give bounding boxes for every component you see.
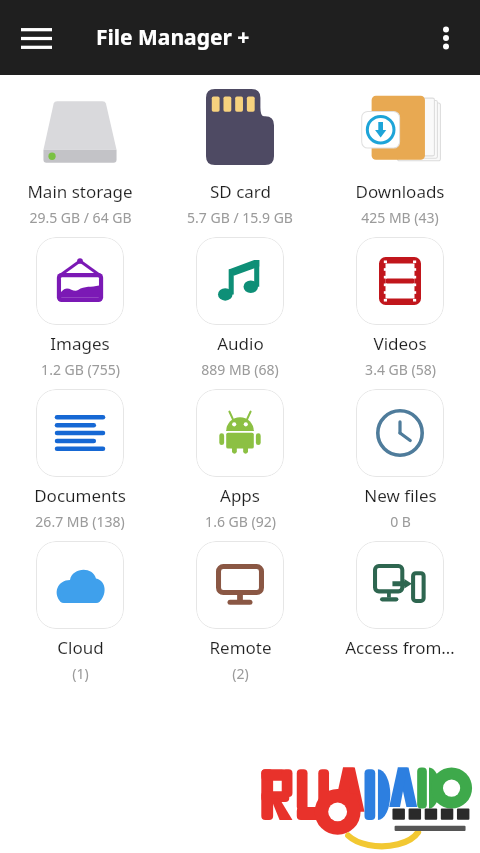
staticText: (2) xyxy=(232,664,249,683)
staticText: 29.5 GB / 64 GB xyxy=(29,208,132,227)
staticText: Downloads xyxy=(355,180,445,203)
staticText: 5.7 GB / 15.9 GB xyxy=(187,208,293,227)
button[interactable]: Documents xyxy=(0,389,160,531)
staticText: Access from… xyxy=(345,636,455,659)
staticText: Apps xyxy=(220,484,260,507)
staticText: 1.2 GB (755) xyxy=(41,360,120,379)
button[interactable]: New files xyxy=(320,389,480,531)
staticText: 0 B xyxy=(390,512,411,531)
staticText: SD card xyxy=(210,180,271,203)
staticText: 889 MB (68) xyxy=(201,360,279,379)
button[interactable]: Access from… xyxy=(320,541,480,664)
button[interactable]: Audio xyxy=(160,237,320,379)
button[interactable]: Videos xyxy=(320,237,480,379)
staticText: Cloud xyxy=(57,636,104,659)
staticText: (1) xyxy=(72,664,89,683)
button[interactable]: Apps xyxy=(160,389,320,531)
staticText: 3.4 GB (58) xyxy=(365,360,436,379)
staticText: New files xyxy=(364,484,437,507)
button[interactable]: Downloads xyxy=(320,81,480,227)
button[interactable]: Cloud xyxy=(0,541,160,683)
staticText: 425 MB (43) xyxy=(361,208,439,227)
staticText: Remote xyxy=(209,636,272,659)
button[interactable]: More options xyxy=(422,14,470,62)
button[interactable]: Remote xyxy=(160,541,320,683)
button[interactable]: Main storage xyxy=(0,81,160,227)
button[interactable]: Images xyxy=(0,237,160,379)
staticText: File Manager + xyxy=(96,23,250,52)
staticText: Audio xyxy=(217,332,264,355)
button[interactable]: Open navigation drawer xyxy=(12,14,60,62)
staticText: Main storage xyxy=(27,180,133,203)
staticText: Documents xyxy=(34,484,126,507)
staticText: Images xyxy=(50,332,110,355)
button[interactable]: SD card xyxy=(160,81,320,227)
staticText: Videos xyxy=(373,332,427,355)
staticText: 26.7 MB (138) xyxy=(35,512,125,531)
staticText: 1.6 GB (92) xyxy=(205,512,276,531)
